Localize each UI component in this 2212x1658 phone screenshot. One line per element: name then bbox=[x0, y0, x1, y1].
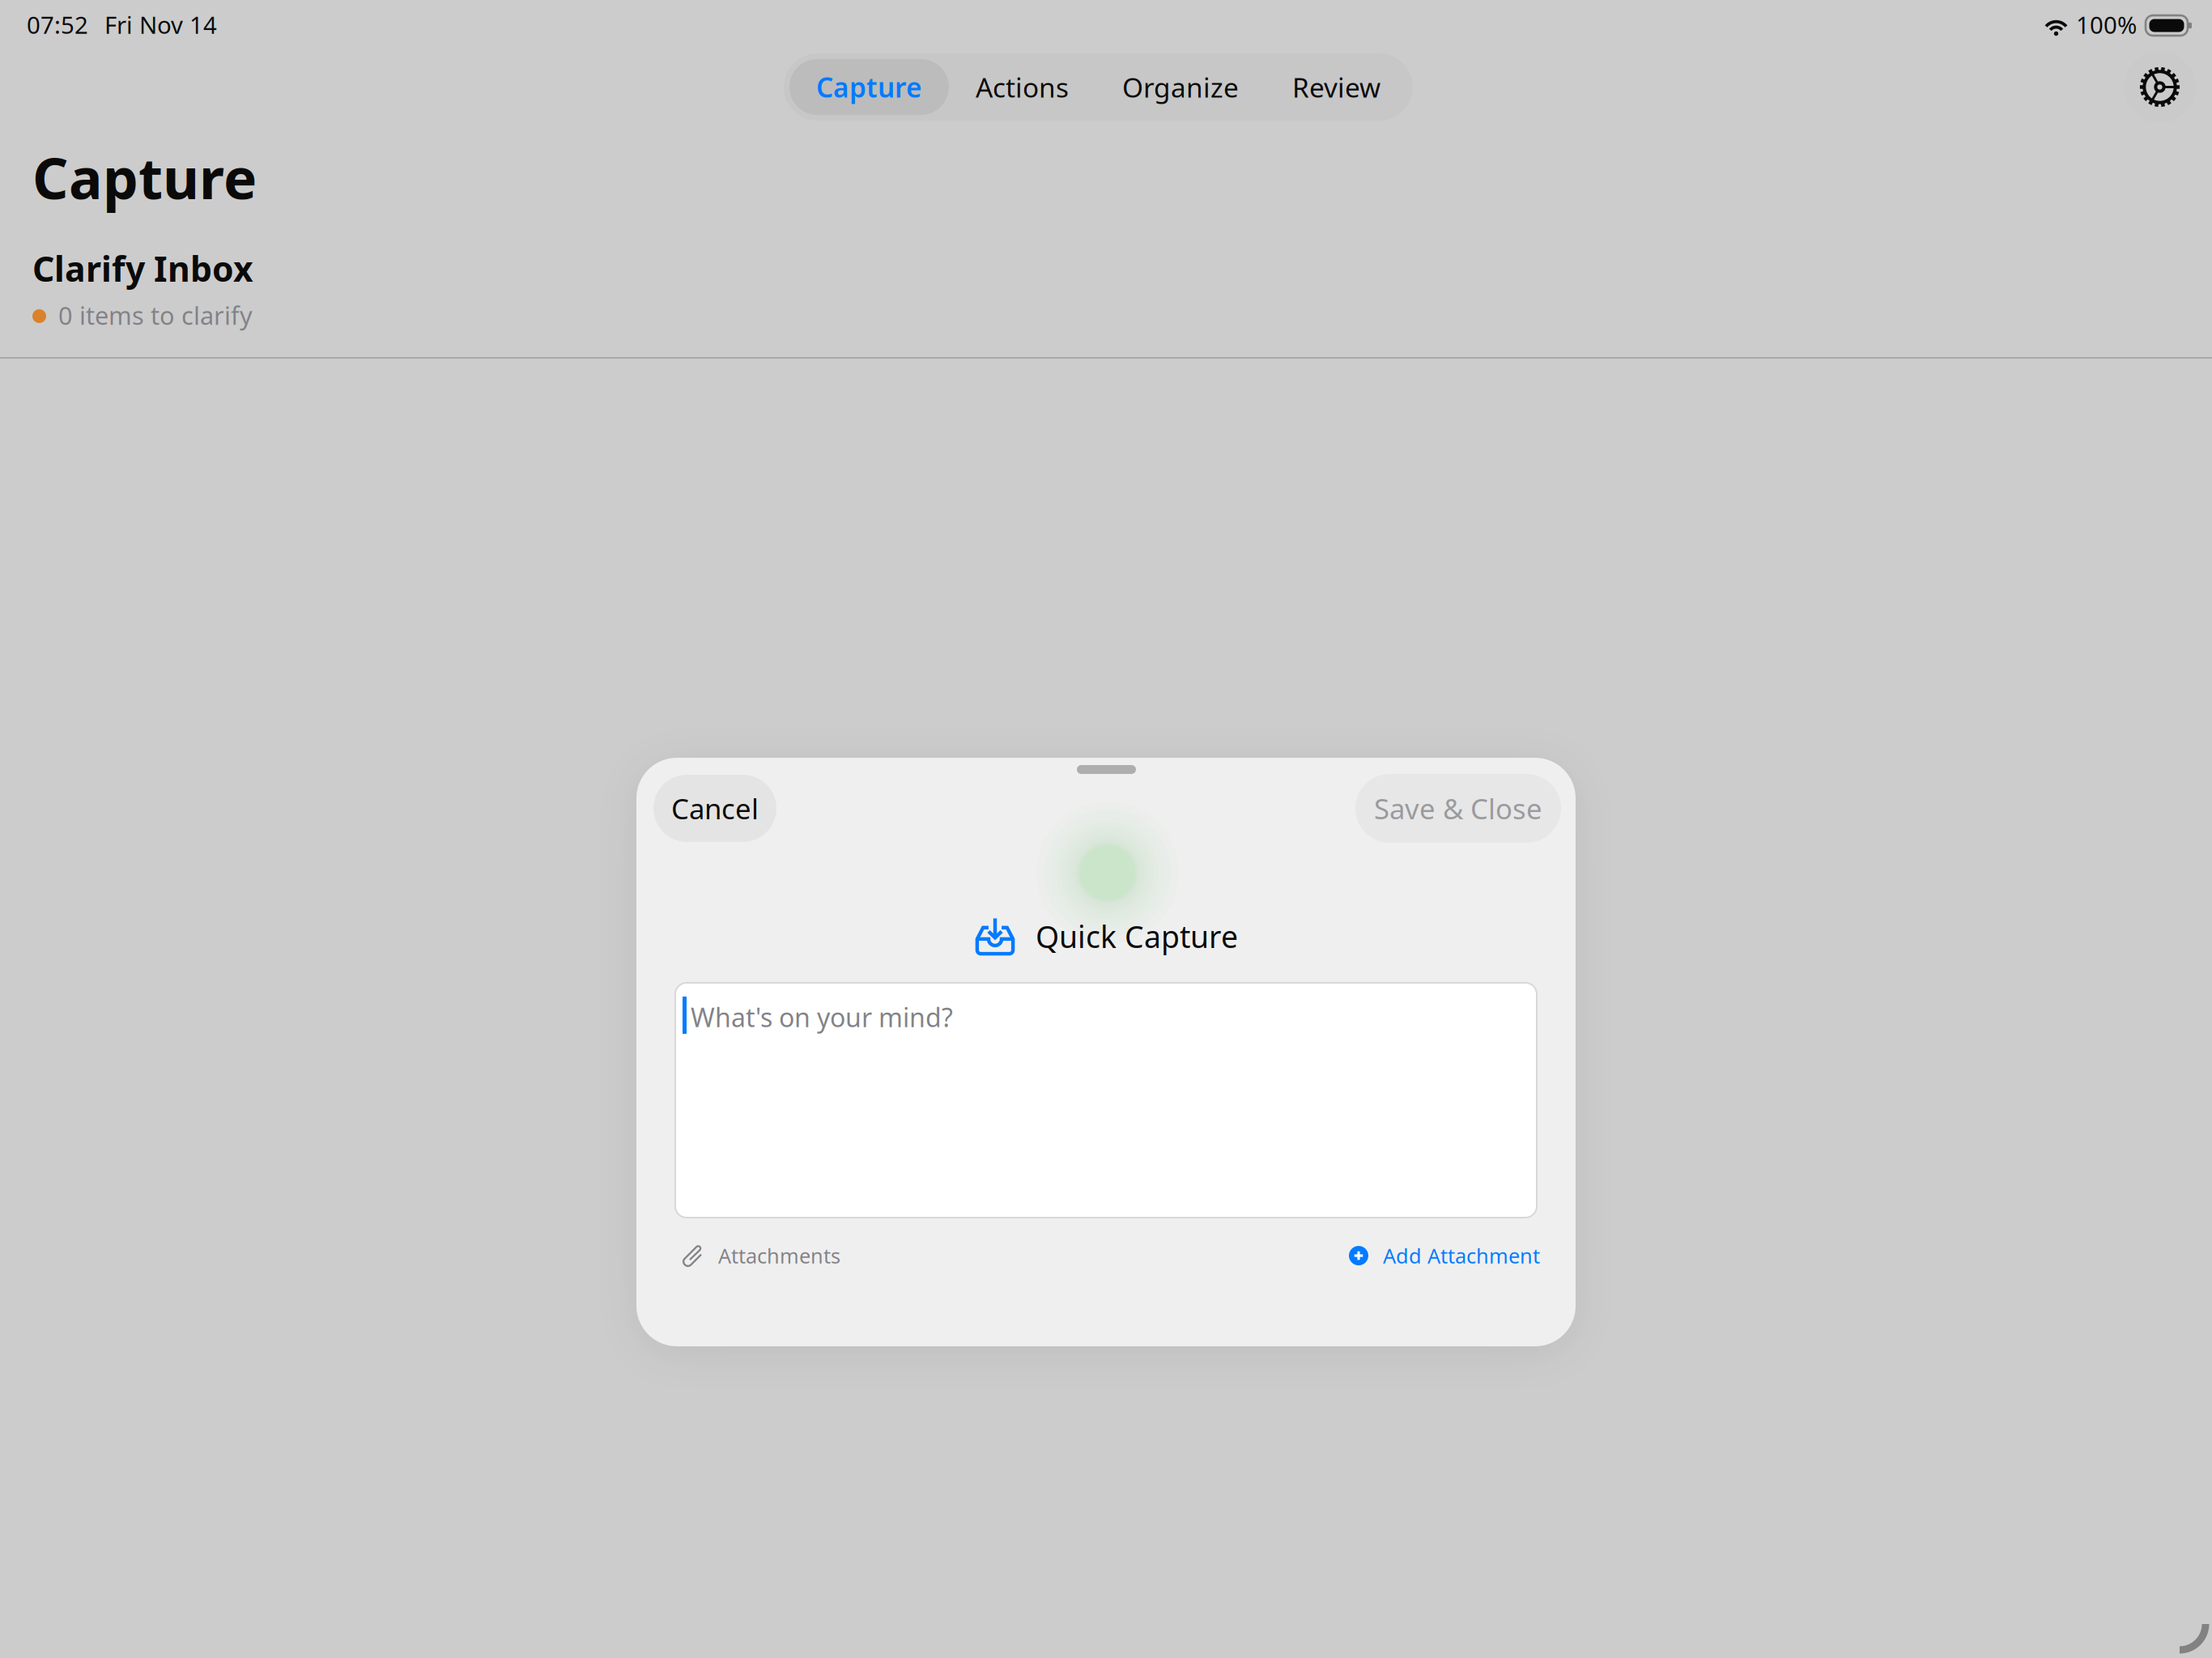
staticText: Capture bbox=[816, 69, 922, 105]
button[interactable]: Actions bbox=[949, 59, 1095, 115]
button[interactable]: Review bbox=[1266, 59, 1407, 115]
staticText: What's on your mind? bbox=[691, 1000, 953, 1034]
staticText: Clarify Inbox bbox=[32, 245, 253, 291]
button[interactable]: Organize bbox=[1095, 59, 1266, 115]
staticText: Cancel bbox=[671, 790, 759, 827]
staticText: Review bbox=[1292, 69, 1380, 105]
staticText: Quick Capture bbox=[1036, 916, 1238, 956]
button[interactable]: Cancel bbox=[653, 775, 776, 842]
staticText: Save & Close bbox=[1374, 790, 1542, 827]
staticText: Actions bbox=[976, 69, 1069, 105]
staticText: Capture bbox=[32, 140, 257, 215]
staticText: 0 items to clarify bbox=[58, 299, 253, 332]
staticText: 100% bbox=[2076, 9, 2137, 40]
button[interactable]: Settings bbox=[2124, 51, 2196, 123]
button[interactable]: Add Attachment bbox=[1349, 1241, 1540, 1270]
staticText: Add Attachment bbox=[1383, 1242, 1540, 1269]
staticText: Fri Nov 14 bbox=[104, 9, 217, 40]
button[interactable]: Capture bbox=[789, 59, 949, 115]
button[interactable]: Save & Close bbox=[1355, 774, 1561, 843]
staticText: 07:52 bbox=[27, 9, 88, 40]
staticText: Attachments bbox=[718, 1242, 840, 1269]
staticText: Organize bbox=[1122, 69, 1239, 105]
